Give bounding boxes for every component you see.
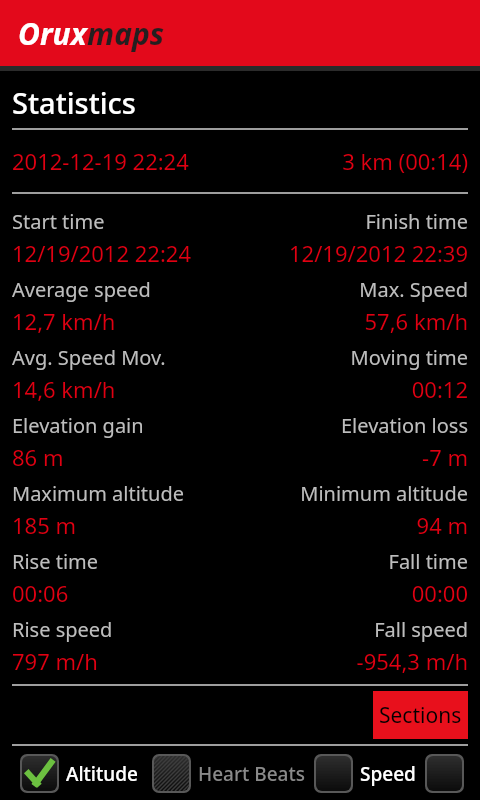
staticText: Statistics xyxy=(12,83,136,122)
staticText: Average speed xyxy=(12,276,240,303)
staticText: Fall time xyxy=(240,548,468,575)
staticText: 86 m xyxy=(12,442,240,472)
staticText: 185 m xyxy=(12,510,240,540)
button[interactable]: Speed xyxy=(314,754,416,793)
staticText: Maximum altitude xyxy=(12,480,240,507)
staticText: Altitude xyxy=(66,761,138,787)
staticText: Speed xyxy=(360,761,416,787)
staticText: Minimum altitude xyxy=(240,480,468,507)
staticText: -954,3 m/h xyxy=(240,646,468,676)
staticText: Elevation loss xyxy=(240,412,468,439)
staticText: Fall speed xyxy=(240,616,468,643)
staticText: Rise time xyxy=(12,548,240,575)
staticText: Orux xyxy=(18,13,87,54)
staticText: Max. Speed xyxy=(240,276,468,303)
staticText: Finish time xyxy=(240,208,468,235)
staticText: 797 m/h xyxy=(12,646,240,676)
staticText: 00:06 xyxy=(12,578,240,608)
staticText: 12,7 km/h xyxy=(12,306,240,336)
staticText: Heart Beats xyxy=(198,761,305,787)
button[interactable]: Sections xyxy=(373,691,468,739)
staticText: 14,6 km/h xyxy=(12,374,240,404)
staticText: Avg. Speed Mov. xyxy=(12,344,240,371)
staticText: Start time xyxy=(12,208,240,235)
staticText: Rise speed xyxy=(12,616,240,643)
staticText: Elevation gain xyxy=(12,412,240,439)
staticText: 12/19/2012 22:39 xyxy=(240,238,468,268)
staticText: 00:12 xyxy=(240,374,468,404)
staticText: 2012-12-19 22:24 xyxy=(12,146,240,176)
staticText: 57,6 km/h xyxy=(240,306,468,336)
staticText: maps xyxy=(87,13,165,54)
staticText: Sections xyxy=(379,701,462,730)
staticText: 94 m xyxy=(240,510,468,540)
staticText: Moving time xyxy=(240,344,468,371)
staticText: -7 m xyxy=(240,442,468,472)
button[interactable]: Slope xyxy=(425,746,470,800)
staticText: 3 km (00:14) xyxy=(240,146,468,176)
staticText: 00:00 xyxy=(240,578,468,608)
button[interactable]: Altitude xyxy=(20,754,138,793)
staticText: 12/19/2012 22:24 xyxy=(12,238,240,268)
